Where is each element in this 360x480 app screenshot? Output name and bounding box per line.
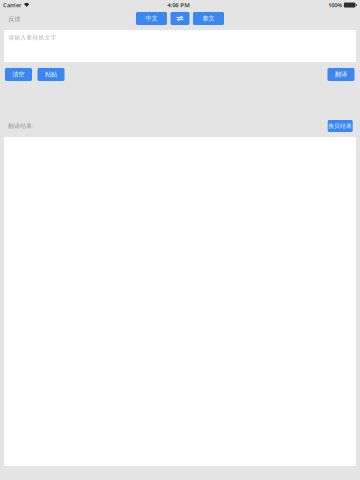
button[interactable]: Swap languages [170, 12, 189, 25]
button[interactable]: 翻译 [327, 68, 354, 81]
button[interactable]: 拷贝结果 [328, 120, 353, 132]
button[interactable]: 清空 [5, 68, 32, 81]
staticText: 粘贴 [45, 70, 57, 78]
staticText: 反馈 [8, 15, 20, 23]
staticText: 翻译结果: [8, 122, 34, 130]
button[interactable]: 泰文 [193, 12, 224, 25]
staticText: 拷贝结果 [328, 122, 352, 129]
staticText: 请输入要转换文字 [8, 34, 56, 41]
button[interactable]: 粘贴 [37, 68, 64, 81]
staticText: 泰文 [202, 14, 214, 22]
staticText: Carrier [3, 1, 21, 9]
staticText: 4:06 PM [167, 1, 190, 9]
button[interactable]: 中文 [136, 12, 167, 25]
button[interactable]: 反馈 [8, 12, 28, 26]
staticText: 翻译 [335, 70, 347, 78]
staticText: 100% [328, 1, 342, 9]
staticText: 清空 [12, 70, 24, 78]
staticText: 中文 [145, 14, 157, 22]
